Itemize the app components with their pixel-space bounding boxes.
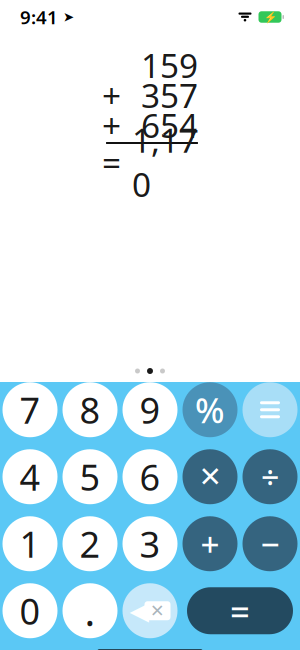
staticText: ⚡	[263, 11, 276, 23]
button[interactable]: 7	[0, 379, 60, 440]
button[interactable]: 8	[60, 379, 120, 440]
button[interactable]: 4	[0, 446, 60, 507]
button[interactable]: 2	[60, 513, 120, 574]
staticText: =	[230, 588, 250, 634]
staticText: ➤	[58, 9, 74, 24]
staticText: 9	[139, 386, 160, 434]
staticText: ✕	[150, 601, 165, 621]
staticText: +	[102, 73, 121, 117]
button[interactable]: Subtract	[240, 513, 300, 574]
button[interactable]: Menu	[240, 379, 300, 440]
button[interactable]: Percent	[180, 379, 240, 440]
button[interactable]: Divide	[240, 446, 300, 507]
staticText: 357	[141, 73, 198, 117]
button[interactable]: 0	[0, 580, 60, 641]
staticText: ✕	[198, 461, 221, 493]
staticText: 1,170	[132, 118, 198, 206]
button[interactable]: Multiply	[180, 446, 240, 507]
staticText: %	[195, 387, 225, 433]
staticText: 159	[141, 43, 198, 87]
button[interactable]: .	[60, 580, 120, 641]
staticText: 5	[79, 453, 100, 501]
staticText: +	[200, 522, 219, 566]
staticText: 3	[139, 520, 160, 568]
staticText: 1	[19, 520, 40, 568]
staticText: 6	[139, 453, 160, 501]
staticText: ◀	[129, 596, 148, 625]
button[interactable]: Delete	[120, 580, 180, 641]
staticText: =	[102, 140, 121, 184]
staticText: 2	[79, 520, 100, 568]
staticText: 654	[141, 103, 198, 147]
button[interactable]: Add	[180, 513, 240, 574]
button[interactable]: 3	[120, 513, 180, 574]
staticText: ÷	[261, 455, 279, 498]
button[interactable]: Equals	[180, 580, 300, 641]
staticText: 0	[19, 587, 40, 635]
staticText: −	[260, 522, 279, 566]
staticText: 9:41	[20, 5, 58, 29]
staticText: .	[84, 584, 95, 637]
button[interactable]: 6	[120, 446, 180, 507]
button[interactable]: 9	[120, 379, 180, 440]
staticText: 4	[19, 453, 40, 501]
button[interactable]: 1	[0, 513, 60, 574]
staticText: 8	[79, 386, 100, 434]
button[interactable]: 5	[60, 446, 120, 507]
staticText: +	[102, 103, 121, 147]
staticText: 7	[19, 386, 40, 434]
